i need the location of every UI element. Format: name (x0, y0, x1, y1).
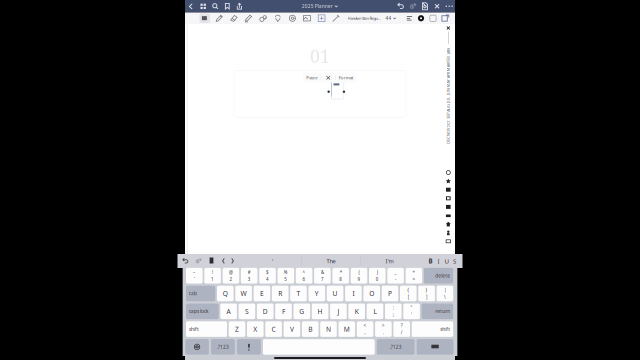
button[interactable]: I'm (360, 254, 418, 268)
button[interactable]: @ (223, 268, 239, 283)
button[interactable] (263, 339, 375, 355)
button[interactable]: * (332, 268, 349, 283)
button[interactable]: W (235, 286, 252, 301)
button[interactable]: Format (336, 73, 357, 83)
button[interactable]: .?123 (211, 339, 235, 355)
button[interactable]: : (385, 303, 402, 319)
button[interactable]: Image (300, 12, 314, 24)
button[interactable]: J (330, 303, 347, 319)
button[interactable]: Link (329, 12, 343, 24)
button[interactable]: Fill colour (429, 12, 437, 24)
button[interactable]: H (312, 303, 328, 319)
button[interactable]: tab (186, 286, 215, 301)
button[interactable]: AUG (444, 104, 453, 112)
button[interactable]: Colour (285, 12, 300, 24)
button[interactable]: Back (185, 0, 197, 12)
button[interactable]: U (327, 286, 343, 301)
button[interactable]: Y (308, 286, 325, 301)
button[interactable]: Cut (321, 73, 335, 83)
button[interactable]: Q (217, 286, 234, 301)
button[interactable]: 44 (385, 12, 396, 24)
button[interactable]: O (363, 286, 380, 301)
button[interactable]: JUL (444, 96, 453, 104)
button[interactable]: APR (444, 71, 453, 79)
button[interactable]: Eraser (227, 12, 241, 24)
button[interactable]: % (277, 268, 294, 283)
button[interactable]: A (220, 303, 237, 319)
button[interactable]: Search (209, 0, 221, 12)
button[interactable]: } (418, 286, 435, 301)
button[interactable]: S (239, 303, 255, 319)
button[interactable]: P (382, 286, 398, 301)
button[interactable]: ) (369, 268, 386, 283)
button[interactable]: Pen (212, 12, 227, 24)
button[interactable]: Paste (303, 73, 321, 83)
button[interactable]: Close sidebar (444, 24, 453, 31)
button[interactable]: Lasso (270, 12, 285, 24)
button[interactable]: Section (444, 177, 453, 185)
button[interactable]: " (403, 303, 420, 319)
button[interactable]: Paste (207, 254, 215, 268)
button[interactable]: Section (444, 211, 453, 220)
button[interactable]: & (314, 268, 331, 283)
button[interactable]: SEP (444, 112, 453, 120)
button[interactable]: I (434, 254, 442, 268)
button[interactable]: return (422, 303, 453, 319)
button[interactable]: K (348, 303, 365, 319)
button[interactable]: < (357, 321, 373, 337)
button[interactable]: DEC (444, 136, 453, 144)
button[interactable]: NOV (444, 128, 453, 136)
button[interactable]: ^ (296, 268, 312, 283)
button[interactable]: { (400, 286, 417, 301)
button[interactable]: Section (444, 228, 453, 237)
button[interactable]: Ink colour (417, 12, 425, 24)
button[interactable]: Close (431, 0, 443, 12)
button[interactable]: Section (444, 203, 453, 211)
button[interactable]: delete (424, 268, 453, 283)
button[interactable]: ? (393, 321, 410, 337)
button[interactable]: Redo (407, 0, 419, 12)
button[interactable]: JUN (444, 87, 453, 96)
button[interactable]: Bookmark (221, 0, 233, 12)
button[interactable]: Thumbnails (197, 0, 209, 12)
button[interactable]: Shapes (256, 12, 270, 24)
button[interactable]: X (247, 321, 264, 337)
button[interactable]: N (320, 321, 337, 337)
button[interactable]: Hide keyboard (417, 339, 453, 355)
button[interactable]: Text box (197, 12, 212, 24)
button[interactable]: T (290, 286, 307, 301)
button[interactable]: E (254, 286, 270, 301)
button[interactable]: F (275, 303, 292, 319)
button[interactable]: JAN (444, 47, 453, 55)
button[interactable]: caps lock (186, 303, 219, 319)
button[interactable]: MAR (444, 63, 453, 71)
button[interactable]: L (367, 303, 383, 319)
button[interactable]: G (293, 303, 310, 319)
button[interactable]: Handwritten Regu… (347, 12, 380, 24)
button[interactable]: Z (229, 321, 245, 337)
button[interactable]: ! (204, 268, 221, 283)
button[interactable]: .?123 (377, 339, 415, 355)
button[interactable]: # (241, 268, 257, 283)
button[interactable]: C (265, 321, 282, 337)
button[interactable]: ( (351, 268, 367, 283)
button[interactable]: V (284, 321, 300, 337)
button[interactable]: Page options (419, 0, 431, 12)
button[interactable]: > (375, 321, 392, 337)
button[interactable]: Share (234, 0, 245, 12)
button[interactable]: R (272, 286, 288, 301)
button[interactable]: Dictate (237, 339, 261, 355)
button[interactable]: Undo (395, 0, 407, 12)
button[interactable]: Undo (181, 254, 189, 268)
button[interactable]: Section (444, 185, 453, 194)
button[interactable]: $ (259, 268, 276, 283)
button[interactable]: Highlighter (241, 12, 256, 24)
button[interactable]: Section (444, 194, 453, 203)
button[interactable]: shift (186, 321, 227, 337)
button[interactable]: Section (444, 237, 453, 246)
button[interactable]: B (426, 254, 434, 268)
button[interactable]: Redo (194, 254, 202, 268)
button[interactable]: D (257, 303, 273, 319)
button[interactable]: OCT (444, 120, 453, 128)
